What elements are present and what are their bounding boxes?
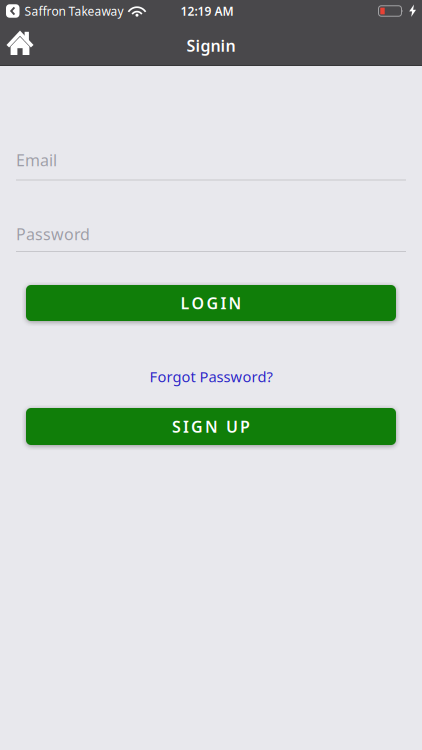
staticText: Password [16, 223, 90, 245]
staticText: Email [16, 149, 57, 171]
staticText: L O G I N [180, 292, 241, 314]
staticText: Saffron Takeaway [24, 3, 123, 19]
staticText: 12:19 AM [180, 3, 233, 19]
staticText: S I G N U P [172, 416, 250, 437]
staticText: Forgot Password? [149, 367, 272, 386]
staticText: Signin [186, 35, 235, 56]
